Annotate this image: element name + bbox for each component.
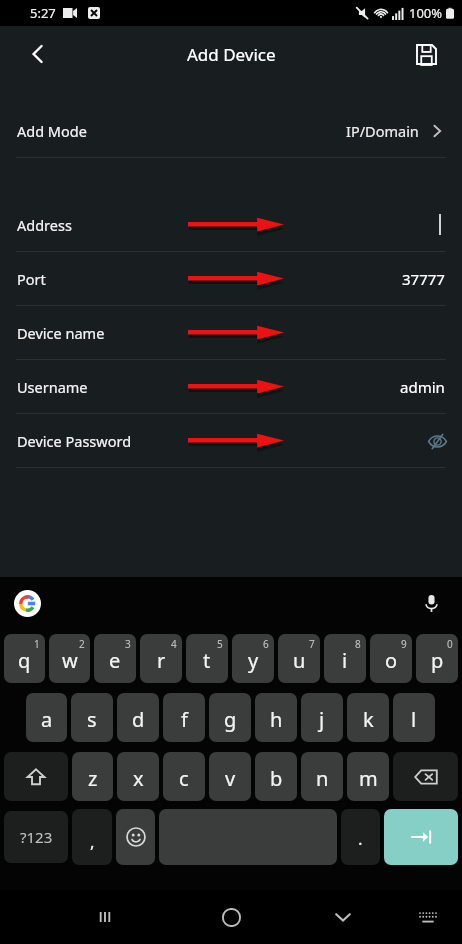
- staticText: q: [18, 647, 31, 674]
- staticText: f: [181, 706, 188, 733]
- button[interactable]: d: [117, 693, 159, 742]
- staticText: b: [270, 765, 283, 792]
- button[interactable]: o: [370, 634, 412, 683]
- button[interactable]: l: [393, 693, 435, 742]
- button[interactable]: r: [140, 634, 182, 683]
- staticText: e: [109, 647, 121, 674]
- button[interactable]: g: [209, 693, 251, 742]
- button[interactable]: b: [255, 752, 297, 801]
- staticText: ,: [90, 830, 95, 853]
- button[interactable]: Save: [402, 30, 450, 78]
- staticText: 37777: [402, 269, 445, 289]
- button[interactable]: j: [301, 693, 343, 742]
- button[interactable]: z: [72, 752, 113, 801]
- button[interactable]: a: [26, 693, 67, 742]
- button[interactable]: Recents: [82, 894, 128, 940]
- staticText: 100%: [409, 4, 443, 22]
- staticText: l: [411, 706, 417, 733]
- staticText: Add Mode: [17, 121, 87, 141]
- staticText: w: [62, 647, 78, 674]
- button[interactable]: Username: [0, 360, 462, 413]
- staticText: u: [293, 647, 306, 674]
- button[interactable]: Address: [0, 198, 462, 251]
- staticText: t: [203, 647, 211, 674]
- staticText: h: [270, 706, 283, 733]
- button[interactable]: Enter: [384, 809, 458, 865]
- button[interactable]: x: [117, 752, 159, 801]
- button[interactable]: p: [416, 634, 458, 683]
- staticText: o: [385, 647, 398, 674]
- staticText: IP/Domain: [346, 121, 419, 141]
- staticText: y: [248, 647, 259, 674]
- button[interactable]: q: [4, 634, 45, 683]
- staticText: s: [87, 706, 97, 733]
- staticText: Address: [17, 215, 72, 235]
- button[interactable]: Shift: [4, 752, 68, 801]
- button[interactable]: Home: [208, 894, 254, 940]
- button[interactable]: ?123: [4, 811, 68, 863]
- button[interactable]: s: [71, 693, 113, 742]
- staticText: 6: [263, 637, 269, 651]
- staticText: i: [342, 647, 348, 674]
- button[interactable]: Space: [159, 809, 337, 865]
- button[interactable]: y: [232, 634, 274, 683]
- staticText: c: [179, 765, 189, 792]
- button[interactable]: .: [341, 809, 380, 865]
- button[interactable]: m: [347, 752, 389, 801]
- staticText: Device Password: [17, 431, 132, 451]
- button[interactable]: Device name: [0, 306, 462, 359]
- button[interactable]: ,: [72, 809, 112, 865]
- button[interactable]: Hide keyboard: [320, 894, 366, 940]
- staticText: 0: [447, 637, 453, 651]
- staticText: r: [157, 647, 166, 674]
- button[interactable]: Voice input: [416, 588, 446, 618]
- button[interactable]: Device Password: [0, 414, 462, 467]
- staticText: 4: [171, 637, 177, 651]
- staticText: x: [133, 765, 144, 792]
- staticText: j: [319, 706, 325, 733]
- button[interactable]: n: [301, 752, 343, 801]
- button[interactable]: t: [186, 634, 228, 683]
- button[interactable]: Google: [14, 590, 41, 617]
- staticText: .: [358, 827, 363, 850]
- button[interactable]: Show password: [420, 424, 454, 458]
- button[interactable]: Add Mode: [0, 106, 462, 156]
- button[interactable]: w: [49, 634, 90, 683]
- staticText: k: [363, 706, 374, 733]
- staticText: 2: [79, 637, 85, 651]
- button[interactable]: Change keyboard: [408, 897, 448, 937]
- button[interactable]: u: [278, 634, 320, 683]
- staticText: 5:27: [30, 4, 56, 22]
- staticText: 8: [355, 637, 361, 651]
- staticText: a: [41, 706, 53, 733]
- staticText: m: [359, 765, 378, 792]
- button[interactable]: Emoji: [116, 809, 155, 865]
- button[interactable]: Port: [0, 252, 462, 305]
- staticText: d: [132, 706, 145, 733]
- button[interactable]: i: [324, 634, 366, 683]
- button[interactable]: h: [255, 693, 297, 742]
- staticText: Add Device: [187, 43, 276, 66]
- staticText: Device name: [17, 323, 105, 343]
- staticText: g: [224, 706, 237, 733]
- button[interactable]: Backspace: [393, 752, 458, 801]
- button[interactable]: c: [163, 752, 205, 801]
- staticText: p: [431, 647, 444, 674]
- staticText: ?123: [20, 827, 53, 847]
- staticText: 1: [34, 637, 40, 651]
- staticText: 9: [401, 637, 407, 651]
- staticText: 5: [217, 637, 223, 651]
- staticText: admin: [400, 377, 445, 397]
- button[interactable]: k: [347, 693, 389, 742]
- button[interactable]: f: [163, 693, 205, 742]
- staticText: Username: [17, 377, 88, 397]
- staticText: Port: [17, 269, 46, 289]
- staticText: 3: [125, 637, 131, 651]
- staticText: v: [225, 765, 236, 792]
- staticText: z: [88, 765, 98, 792]
- staticText: n: [316, 765, 329, 792]
- button[interactable]: e: [94, 634, 136, 683]
- button[interactable]: v: [209, 752, 251, 801]
- button[interactable]: Back: [14, 30, 62, 78]
- staticText: 7: [309, 637, 315, 651]
